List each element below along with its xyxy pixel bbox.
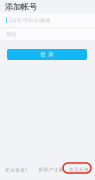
button[interactable]: 登 录: [7, 49, 87, 60]
staticText: 无法登录?: [5, 167, 27, 173]
staticText: 意见反馈: [69, 167, 89, 173]
button[interactable]: 无法登录?: [5, 167, 27, 173]
staticText: 新用户注册: [38, 167, 63, 173]
button[interactable]: 意见反馈: [69, 167, 89, 173]
staticText: QQ号/手机号/邮箱: [8, 17, 50, 24]
staticText: 密码: [6, 31, 16, 37]
staticText: 登 录: [40, 51, 54, 58]
staticText: 添加帐号: [5, 1, 37, 12]
button[interactable]: 新用户注册: [38, 167, 63, 173]
